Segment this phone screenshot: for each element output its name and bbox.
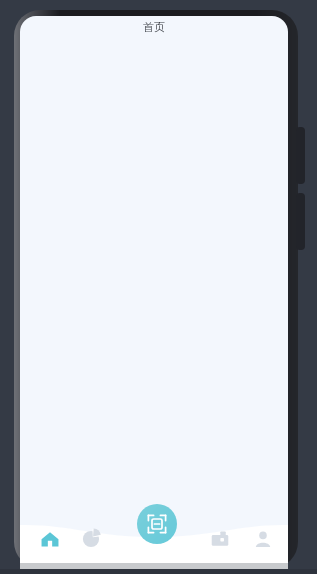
button[interactable]: 统计 — [74, 522, 108, 556]
button[interactable]: 首页 — [33, 522, 67, 556]
staticText: 首页 — [143, 20, 165, 34]
button[interactable]: 扫一扫 — [137, 504, 177, 544]
button[interactable]: 钱包 — [203, 522, 237, 556]
button[interactable]: 我的 — [246, 522, 280, 556]
